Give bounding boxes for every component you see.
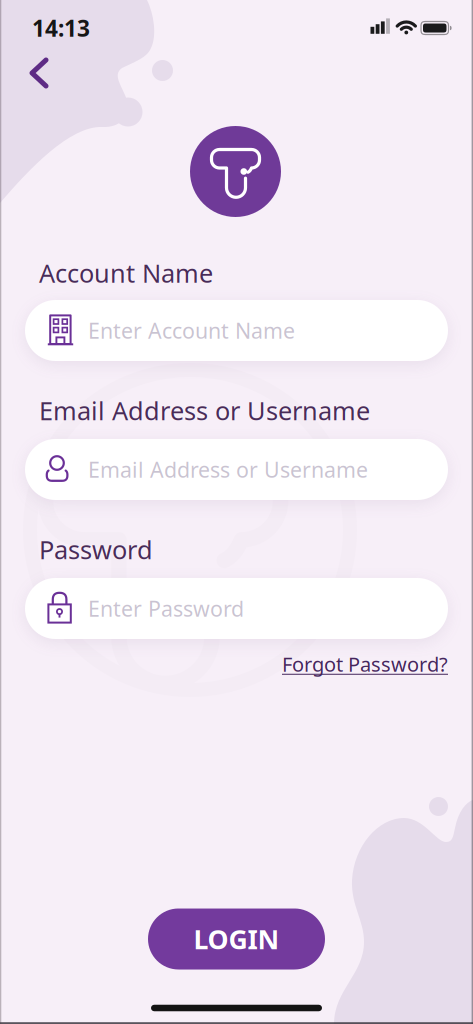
staticText: LOGIN [193,921,279,957]
staticText: 14:13 [32,13,90,43]
staticText: Account Name [39,256,213,290]
button[interactable]: Enter Account Name [25,300,448,361]
button[interactable]: Enter Password [25,578,448,639]
button[interactable]: LOGIN [148,908,325,969]
staticText: Forgot Password? [282,651,448,677]
staticText: Enter Account Name [88,316,295,345]
staticText: Password [39,533,153,566]
staticText: Enter Password [88,594,244,623]
staticText: Email Address or Username [39,394,370,427]
staticText: Email Address or Username [88,455,368,484]
button[interactable]: Email Address or Username [25,439,448,500]
button[interactable]: Forgot Password? [282,651,448,677]
button[interactable]: Back [22,46,56,100]
